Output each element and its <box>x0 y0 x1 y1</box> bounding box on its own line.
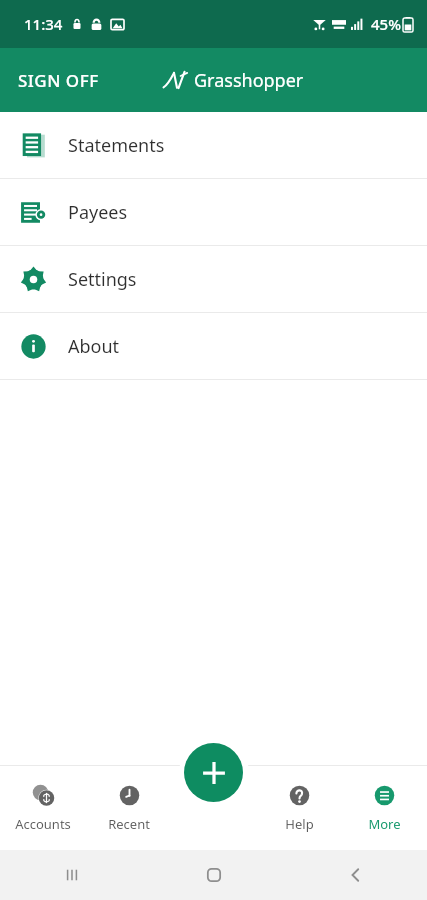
button[interactable]: Payees <box>0 179 427 245</box>
button[interactable]: Statements <box>0 112 427 178</box>
button[interactable]: About <box>0 313 427 379</box>
staticText: Grasshopper <box>194 68 304 93</box>
button[interactable]: Add <box>184 743 243 802</box>
button[interactable]: Help <box>257 766 342 850</box>
button[interactable]: Settings <box>0 246 427 312</box>
button[interactable]: Recent <box>86 766 172 850</box>
staticText: More <box>368 815 401 833</box>
button[interactable]: Accounts <box>0 766 86 850</box>
staticText: Accounts <box>15 815 71 833</box>
staticText: 45% <box>371 14 401 34</box>
staticText: 11:34 <box>24 14 63 34</box>
button[interactable]: SIGN OFF <box>0 57 117 104</box>
staticText: About <box>68 334 120 359</box>
staticText: Statements <box>68 133 165 158</box>
button[interactable]: Recents <box>0 850 143 900</box>
staticText: Help <box>285 815 314 833</box>
staticText: Payees <box>68 200 128 225</box>
button[interactable]: More <box>342 766 427 850</box>
button[interactable]: Back <box>285 850 427 900</box>
staticText: SIGN OFF <box>18 69 99 92</box>
staticText: Settings <box>68 267 137 292</box>
staticText: Recent <box>108 815 150 833</box>
button[interactable]: Home <box>143 850 285 900</box>
